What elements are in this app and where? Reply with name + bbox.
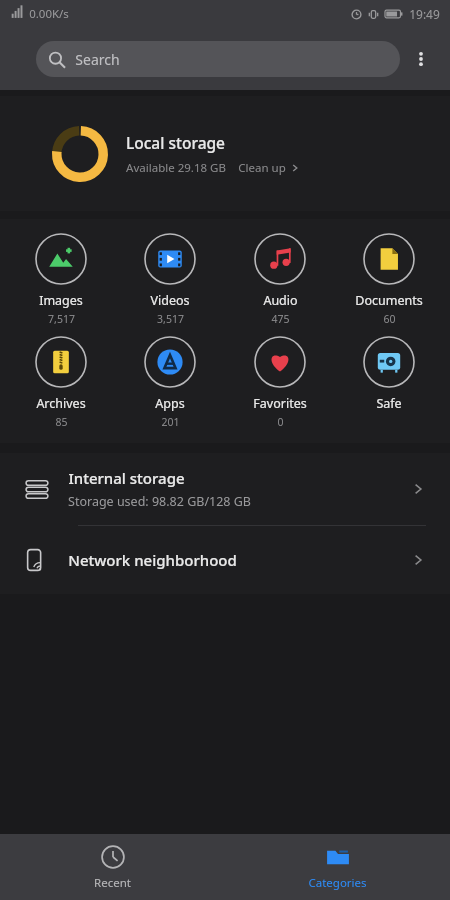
staticText: Archives (36, 395, 86, 412)
staticText: Clean up (238, 160, 286, 176)
button[interactable]: Clean up (238, 160, 300, 176)
button[interactable]: Archives (13, 334, 109, 431)
staticText: 85 (55, 415, 68, 429)
staticText: Apps (155, 395, 185, 412)
staticText: Images (39, 292, 83, 309)
button[interactable]: Local storage (0, 96, 450, 211)
staticText: 60 (383, 312, 396, 326)
button[interactable]: Audio (232, 231, 328, 328)
staticText: Documents (355, 292, 423, 309)
staticText: 7,517 (48, 312, 75, 326)
button[interactable]: Documents (341, 231, 437, 328)
button[interactable]: Safe (341, 334, 437, 414)
button[interactable]: Recent (0, 834, 225, 900)
staticText: Audio (263, 292, 298, 309)
button[interactable]: Videos (122, 231, 218, 328)
staticText: Storage used: 98.82 GB/128 GB (68, 493, 251, 510)
staticText: 0 (277, 415, 284, 429)
staticText: Recent (94, 875, 131, 891)
staticText: Videos (150, 292, 190, 309)
staticText: 475 (271, 312, 290, 326)
staticText: 0.00K/s (29, 6, 69, 22)
button[interactable]: Search (36, 41, 400, 77)
button[interactable]: Categories (225, 834, 450, 900)
button[interactable]: More options (400, 38, 442, 80)
staticText: Search (75, 50, 120, 69)
staticText: Network neighborhood (68, 550, 237, 570)
staticText: 201 (161, 415, 180, 429)
staticText: 19:49 (409, 6, 440, 22)
button[interactable]: Images (13, 231, 109, 328)
button[interactable]: Internal storage (0, 453, 450, 525)
staticText: 3,517 (157, 312, 184, 326)
staticText: Categories (308, 875, 367, 891)
button[interactable]: Favorites (232, 334, 328, 431)
staticText: Favorites (253, 395, 307, 412)
button[interactable]: Network neighborhood (0, 526, 450, 594)
staticText: Local storage (126, 132, 225, 153)
button[interactable]: Apps (122, 334, 218, 431)
staticText: Internal storage (68, 468, 185, 488)
staticText: Safe (376, 395, 402, 412)
staticText: Available 29.18 GB (126, 160, 226, 176)
